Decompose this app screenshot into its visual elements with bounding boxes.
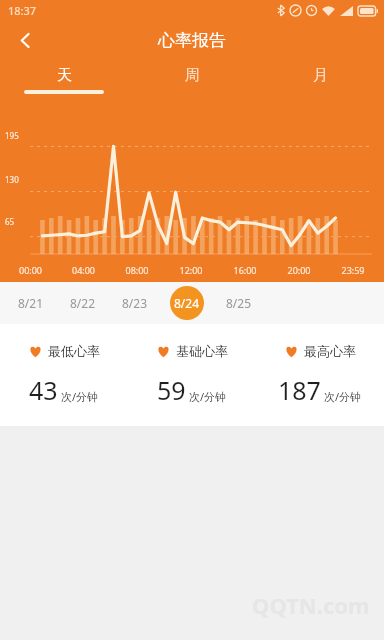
staticText: 08:00	[110, 264, 164, 276]
staticText: 次/分钟	[324, 389, 362, 404]
staticText: 130	[5, 174, 19, 185]
staticText: 心率报告	[158, 30, 226, 51]
button[interactable]: 8/25	[222, 286, 256, 320]
staticText: 20:00	[272, 264, 326, 276]
staticText: 周	[185, 66, 200, 85]
button[interactable]: 最低心率	[0, 324, 128, 426]
staticText: 187	[278, 373, 321, 407]
staticText: 23:59	[326, 264, 380, 276]
staticText: QQTN.com	[252, 590, 370, 620]
staticText: 00:00	[4, 264, 57, 276]
staticText: 最低心率	[48, 343, 100, 359]
staticText: 次/分钟	[189, 389, 227, 404]
button[interactable]: Back	[6, 21, 44, 59]
button[interactable]: 8/23	[118, 286, 152, 320]
staticText: 最高心率	[304, 343, 356, 359]
button[interactable]: 周	[128, 60, 256, 100]
staticText: 8/23	[122, 295, 148, 311]
staticText: 16:00	[218, 264, 272, 276]
button[interactable]: 8/21	[14, 286, 48, 320]
button[interactable]: 月	[256, 60, 384, 100]
staticText: 基础心率	[176, 343, 228, 359]
button[interactable]: 最高心率	[256, 324, 384, 426]
staticText: 天	[57, 66, 72, 85]
button[interactable]: 8/24	[170, 286, 204, 320]
staticText: 195	[5, 130, 19, 141]
staticText: 12:00	[164, 264, 218, 276]
staticText: 月	[313, 66, 328, 85]
staticText: 8/22	[70, 295, 96, 311]
staticText: 8/25	[226, 295, 252, 311]
button[interactable]: 基础心率	[128, 324, 256, 426]
staticText: 43	[29, 373, 58, 407]
staticText: 04:00	[57, 264, 110, 276]
staticText: 8/21	[18, 295, 44, 311]
staticText: 65	[5, 216, 15, 227]
button[interactable]: 天	[0, 60, 128, 100]
staticText: 59	[157, 373, 186, 407]
staticText: 8/24	[174, 295, 200, 311]
staticText: 次/分钟	[61, 389, 99, 404]
button[interactable]: 8/22	[66, 286, 100, 320]
staticText: 18:37	[8, 3, 37, 18]
